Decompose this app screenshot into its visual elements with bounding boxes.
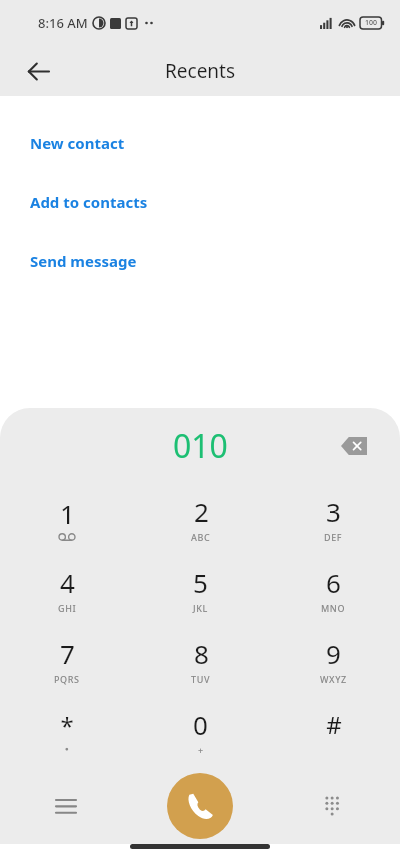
button[interactable]: Back [16, 49, 60, 93]
staticText: WXYZ [320, 673, 347, 685]
staticText: GHI [58, 602, 77, 614]
button[interactable]: 7 [0, 625, 134, 696]
button[interactable]: Call log [44, 784, 88, 828]
staticText: 7 [60, 636, 75, 671]
button[interactable]: New contact [0, 113, 400, 172]
staticText: 4 [60, 565, 75, 600]
staticText: 1 [60, 496, 75, 531]
button[interactable]: 3 [267, 483, 400, 554]
button[interactable]: 1 [0, 483, 134, 554]
staticText: 3 [326, 494, 341, 529]
button[interactable]: Send message [0, 231, 400, 290]
button[interactable]: 2 [134, 483, 267, 554]
staticText: JKL [193, 602, 208, 614]
button[interactable]: Backspace [332, 424, 376, 468]
staticText: 100 [365, 18, 378, 28]
button[interactable]: 6 [267, 554, 400, 625]
staticText: DEF [324, 531, 343, 543]
staticText: # [326, 708, 342, 741]
button[interactable]: 9 [267, 625, 400, 696]
staticText: PQRS [54, 673, 80, 685]
button[interactable]: # [267, 696, 400, 767]
staticText: * [60, 709, 74, 742]
staticText: ∙ [64, 744, 71, 754]
staticText: MNO [321, 602, 346, 614]
staticText: 6 [326, 565, 341, 600]
button[interactable]: 0 [134, 696, 267, 767]
staticText: 0 [193, 707, 208, 742]
button[interactable]: 8 [134, 625, 267, 696]
staticText: 010 [173, 424, 228, 468]
staticText: 2 [194, 494, 209, 529]
button[interactable]: Dialpad [312, 784, 356, 828]
button[interactable]: * [0, 696, 134, 767]
staticText: New contact [30, 133, 125, 153]
staticText: ABC [191, 531, 211, 543]
staticText: 9 [326, 636, 341, 671]
staticText: Recents [165, 58, 236, 84]
button[interactable]: 4 [0, 554, 134, 625]
button[interactable]: Call [167, 773, 233, 839]
button[interactable]: 5 [134, 554, 267, 625]
staticText: Add to contacts [30, 192, 148, 212]
staticText: + [198, 744, 204, 756]
staticText: TUV [191, 673, 211, 685]
staticText: 5 [193, 565, 208, 600]
button[interactable]: Add to contacts [0, 172, 400, 231]
staticText: 8:16 AM [38, 14, 88, 32]
staticText: Send message [30, 251, 137, 271]
staticText: 8 [194, 636, 209, 671]
